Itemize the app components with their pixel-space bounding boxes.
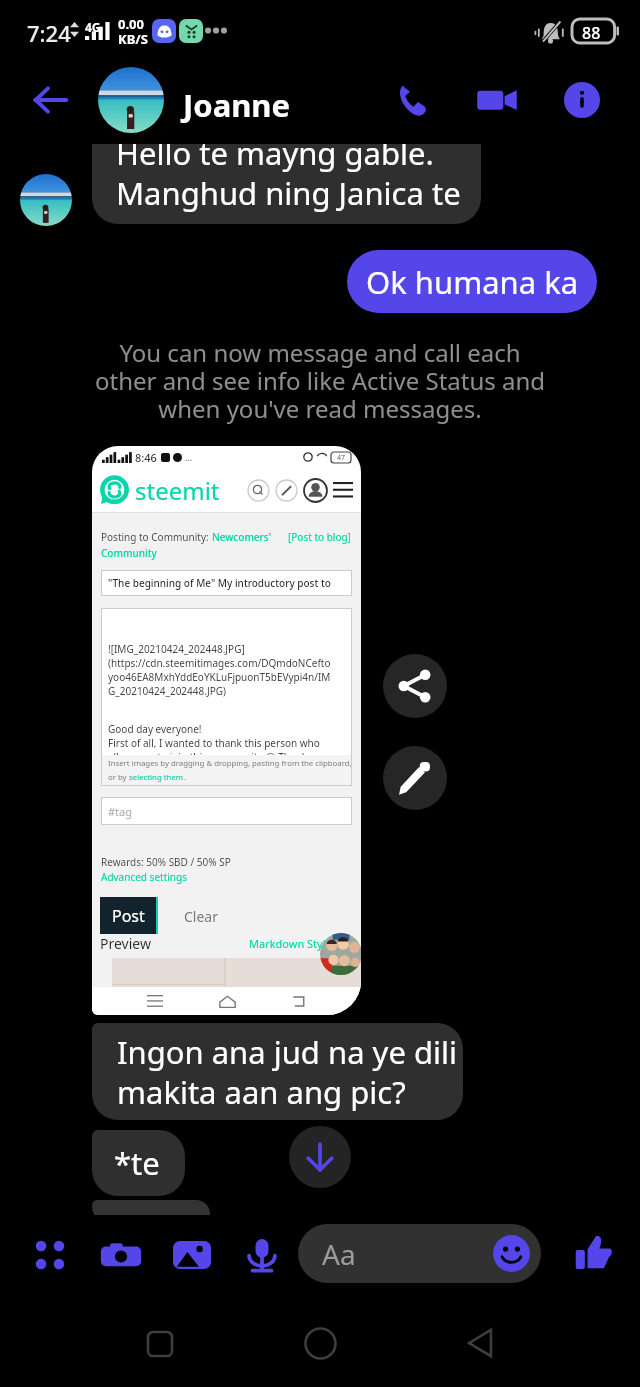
button[interactable]: Send a like xyxy=(568,1227,620,1279)
staticText: Joanne xyxy=(183,84,291,126)
button[interactable]: Home xyxy=(295,1318,345,1368)
staticText: steemit xyxy=(135,474,220,507)
button[interactable]: Edit xyxy=(383,746,447,810)
button[interactable]: Ok humana ka xyxy=(347,250,597,313)
staticText: Post xyxy=(112,905,145,927)
staticText: 47 xyxy=(337,453,346,463)
button[interactable]: *te xyxy=(92,1130,185,1196)
staticText: 0.00 xyxy=(118,15,144,33)
button[interactable]: Scroll to bottom xyxy=(289,1126,351,1188)
button[interactable]: Voice message xyxy=(236,1229,288,1281)
staticText: ... xyxy=(185,451,193,463)
staticText: Clear xyxy=(184,907,218,926)
staticText: Rewards: 50% SBD / 50% SP xyxy=(101,855,231,869)
staticText: Markdown Stylin xyxy=(249,936,336,951)
staticText: #tag xyxy=(108,804,133,819)
staticText: 8:46 xyxy=(135,450,157,465)
staticText: Preview xyxy=(100,934,151,953)
button[interactable]: Share xyxy=(383,654,447,718)
button[interactable]: Ingon ana jud na ye dili makita aan ang … xyxy=(92,1023,463,1120)
staticText: . xyxy=(184,772,187,783)
button[interactable]: Open apps xyxy=(24,1229,76,1281)
staticText: Good day everyone! First of all, I wante… xyxy=(108,722,328,764)
staticText: or by xyxy=(108,772,129,783)
button[interactable]: Aa xyxy=(298,1224,541,1283)
button[interactable]: Camera xyxy=(95,1229,147,1281)
staticText: Aa xyxy=(322,1235,356,1273)
staticText: Community xyxy=(101,546,157,560)
button[interactable]: Hello te mayng gable. Manghud ning Janic… xyxy=(92,128,481,224)
staticText: "The beginning of Me" My introductory po… xyxy=(108,576,331,590)
staticText: ![IMG_20210424_202448.JPG] (https://cdn.… xyxy=(108,642,331,698)
button[interactable]: Post xyxy=(100,897,156,934)
button[interactable]: Back xyxy=(24,74,76,126)
staticText: You can now message and call each other … xyxy=(60,336,580,425)
button[interactable]: 8:46 xyxy=(92,446,361,1015)
button[interactable]: Video call xyxy=(470,73,524,127)
staticText: 7:24 xyxy=(27,18,71,48)
button[interactable]: Back xyxy=(455,1318,505,1368)
staticText: 88 xyxy=(582,22,601,44)
staticText: selecting them xyxy=(129,772,184,783)
staticText: Posting to Community: xyxy=(101,530,212,544)
staticText: Ok humana ka xyxy=(366,261,579,303)
staticText: KB/S xyxy=(118,30,148,48)
staticText: [Post to blog] xyxy=(288,530,351,544)
staticText: Insert images by dragging & dropping, pa… xyxy=(108,758,352,769)
staticText: Newcomers' xyxy=(212,530,272,544)
button[interactable]: Gallery xyxy=(166,1229,218,1281)
staticText: Hello te mayng gable. Manghud ning Janic… xyxy=(116,132,461,214)
staticText: *te xyxy=(114,1142,160,1184)
staticText: Advanced settings xyxy=(101,870,187,884)
button[interactable]: Conversation information xyxy=(555,73,609,127)
staticText: Ingon ana jud na ye dili makita aan ang … xyxy=(117,1031,458,1113)
button[interactable]: Recent apps xyxy=(135,1319,185,1369)
button[interactable]: Voice call xyxy=(385,73,439,127)
staticText: 4G xyxy=(85,19,101,35)
